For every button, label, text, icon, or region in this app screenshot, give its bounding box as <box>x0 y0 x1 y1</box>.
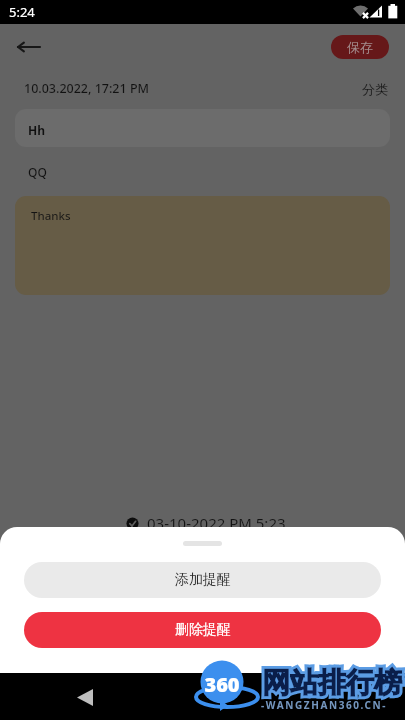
staticText: 网站排行榜 <box>262 665 402 700</box>
staticText: 分类 <box>362 81 388 97</box>
staticText: 10.03.2022, 17:21 PM <box>24 80 150 97</box>
staticText: 添加提醒 <box>175 571 231 589</box>
staticText: 03-10-2022 PM 5:23 <box>147 513 286 533</box>
button[interactable]: 删除提醒 <box>24 612 381 648</box>
staticText: Thanks <box>31 208 71 224</box>
staticText: 网站排行榜 <box>262 665 402 700</box>
button[interactable]: Back <box>6 25 50 69</box>
button[interactable]: Back <box>67 679 103 715</box>
staticText: QQ <box>28 164 47 180</box>
staticText: -WANGZHAN360.CN- <box>261 698 388 712</box>
button[interactable]: 添加提醒 <box>24 562 381 598</box>
staticText: 360 <box>204 671 240 698</box>
staticText: 删除提醒 <box>175 621 231 639</box>
staticText: 保存 <box>347 39 373 55</box>
staticText: Hh <box>28 122 45 138</box>
button[interactable]: 保存 <box>331 35 389 59</box>
staticText: 5:24 <box>9 3 35 21</box>
button[interactable]: Hh <box>15 109 390 147</box>
